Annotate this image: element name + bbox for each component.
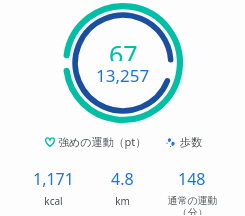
staticText: 4.8 (111, 168, 134, 190)
button[interactable]: 148 (155, 167, 229, 216)
button[interactable]: Activity rings: 67 heart points, 13,257 … (63, 3, 183, 123)
staticText: 通常の運動 （分） (167, 194, 218, 215)
button[interactable]: 歩数 (163, 133, 204, 151)
staticText: 1,171 (33, 168, 74, 190)
staticText: 148 (178, 168, 206, 190)
button[interactable]: 4.8 (89, 167, 155, 209)
staticText: kcal (44, 194, 63, 208)
staticText: 67 (109, 37, 138, 61)
staticText: 歩数 (180, 135, 202, 149)
staticText: 強めの運動（pt） (58, 134, 147, 149)
button[interactable]: 強めの運動（pt） (42, 132, 149, 151)
button[interactable]: 1,171 (17, 167, 89, 209)
staticText: 13,257 (96, 64, 150, 87)
staticText: km (115, 194, 130, 208)
